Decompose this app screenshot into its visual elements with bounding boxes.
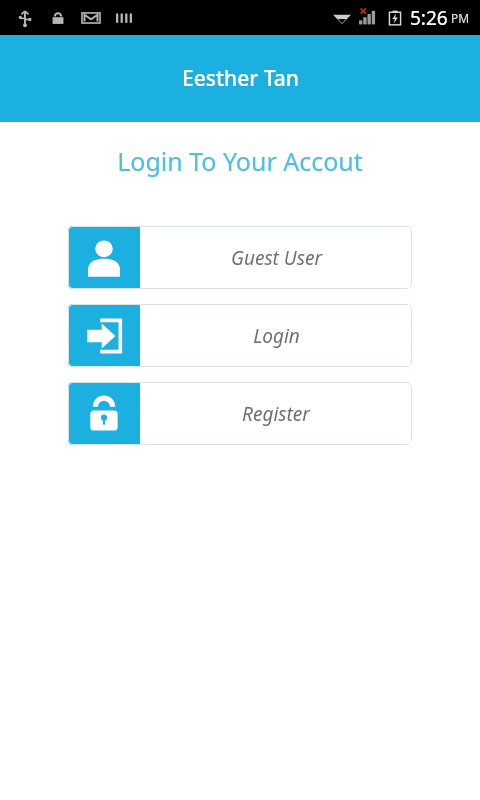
button[interactable]: Register	[68, 382, 412, 445]
button[interactable]: Login	[68, 304, 412, 367]
staticText: PM	[451, 10, 470, 26]
staticText: Login	[253, 323, 300, 349]
staticText: Eesther Tan	[182, 64, 299, 93]
button[interactable]: Guest User	[68, 226, 412, 289]
staticText: Register	[242, 401, 310, 427]
staticText: Guest User	[231, 245, 322, 271]
staticText: 5:26	[410, 5, 448, 31]
staticText: Login To Your Accout	[117, 144, 363, 178]
